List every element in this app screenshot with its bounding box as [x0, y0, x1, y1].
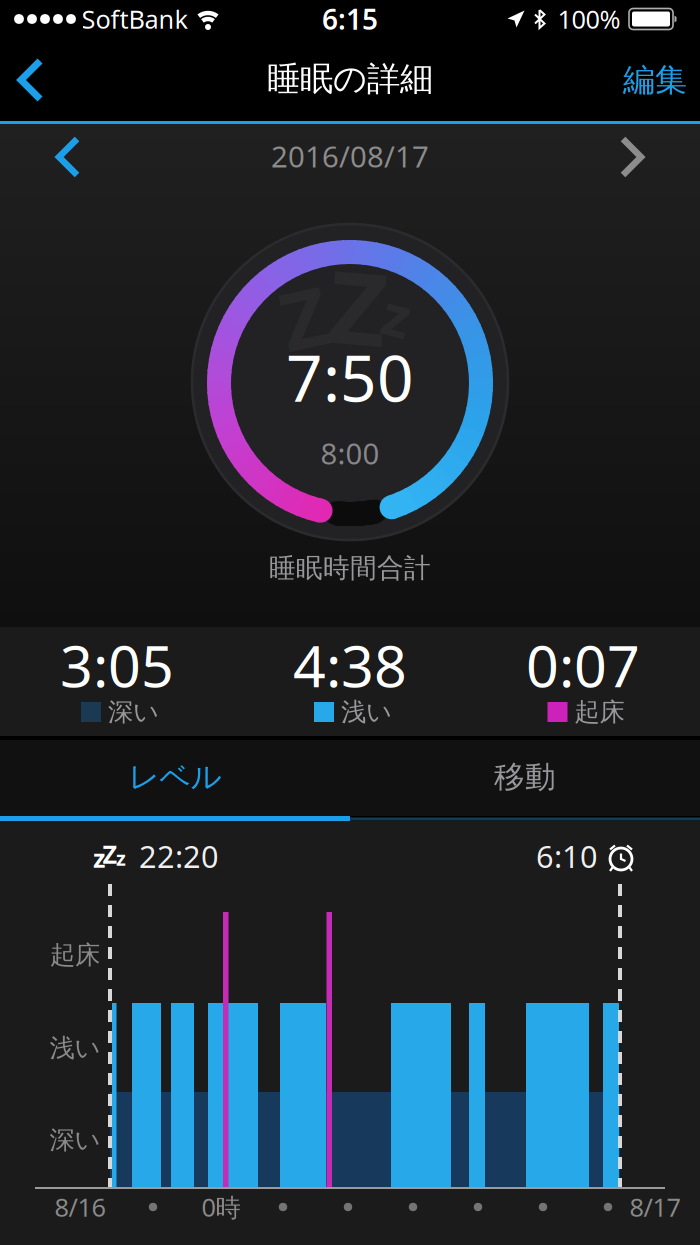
button[interactable]: レベル	[0, 738, 350, 816]
staticText: 22:20	[139, 836, 219, 876]
staticText: 0時	[201, 1190, 240, 1224]
staticText: 睡眠時間合計	[269, 552, 431, 584]
staticText: SoftBank	[81, 2, 188, 36]
staticText: z	[383, 278, 411, 352]
staticText: 深い	[108, 696, 159, 727]
staticText: 浅い	[341, 696, 392, 727]
staticText: 8/17	[629, 1190, 680, 1224]
staticText: 浅い	[49, 1032, 100, 1063]
staticText: 7:50	[286, 334, 414, 419]
staticText: Z	[281, 264, 327, 370]
staticText: z	[116, 845, 126, 871]
staticText: 4:38	[293, 627, 407, 703]
button[interactable]: 移動	[350, 738, 700, 816]
staticText: 移動	[494, 758, 556, 796]
staticText: 編集	[623, 60, 687, 100]
button[interactable]: 戻る	[0, 49, 62, 111]
staticText: 8:00	[320, 433, 379, 472]
staticText: 3:05	[60, 627, 174, 703]
button[interactable]: 次の日	[608, 133, 656, 181]
staticText: z	[93, 841, 105, 875]
staticText: 6:10	[536, 836, 598, 876]
staticText: 深い	[49, 1124, 100, 1155]
staticText: 0:07	[526, 627, 640, 703]
staticText: 睡眠の詳細	[267, 58, 433, 99]
button[interactable]: 前の日	[44, 133, 92, 181]
staticText: 6:15	[322, 0, 378, 38]
staticText: Z	[102, 837, 117, 871]
staticText: Z	[329, 240, 387, 372]
staticText: 8/16	[54, 1190, 105, 1224]
staticText: 起床	[50, 939, 100, 970]
staticText: 2016/08/17	[271, 136, 429, 175]
staticText: 100%	[557, 2, 620, 36]
button[interactable]: 編集	[607, 45, 700, 115]
staticText: レベル	[128, 758, 221, 796]
staticText: 起床	[574, 696, 624, 727]
